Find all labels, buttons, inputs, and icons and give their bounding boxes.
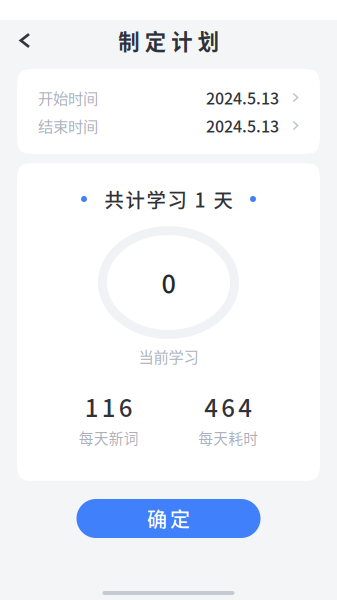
button[interactable]: 开始时间 xyxy=(17,84,320,111)
staticText: 464 xyxy=(204,389,252,424)
staticText: 共计学习 1 天 xyxy=(104,185,232,213)
button[interactable]: Back xyxy=(8,23,42,57)
staticText: 每天耗时 xyxy=(198,427,258,448)
staticText: 0 xyxy=(161,264,175,301)
staticText: 当前学习 xyxy=(138,345,198,367)
button[interactable]: 结束时间 xyxy=(17,112,320,139)
button[interactable]: 确定 xyxy=(76,499,260,538)
staticText: 结束时间 xyxy=(38,114,98,137)
staticText: 开始时间 xyxy=(38,86,98,109)
staticText: 2024.5.13 xyxy=(206,114,279,137)
staticText: 每天新词 xyxy=(79,427,139,448)
staticText: 制定计划 xyxy=(118,25,219,56)
staticText: 116 xyxy=(85,389,133,424)
staticText: 确定 xyxy=(147,504,190,533)
staticText: 2024.5.13 xyxy=(206,86,279,109)
